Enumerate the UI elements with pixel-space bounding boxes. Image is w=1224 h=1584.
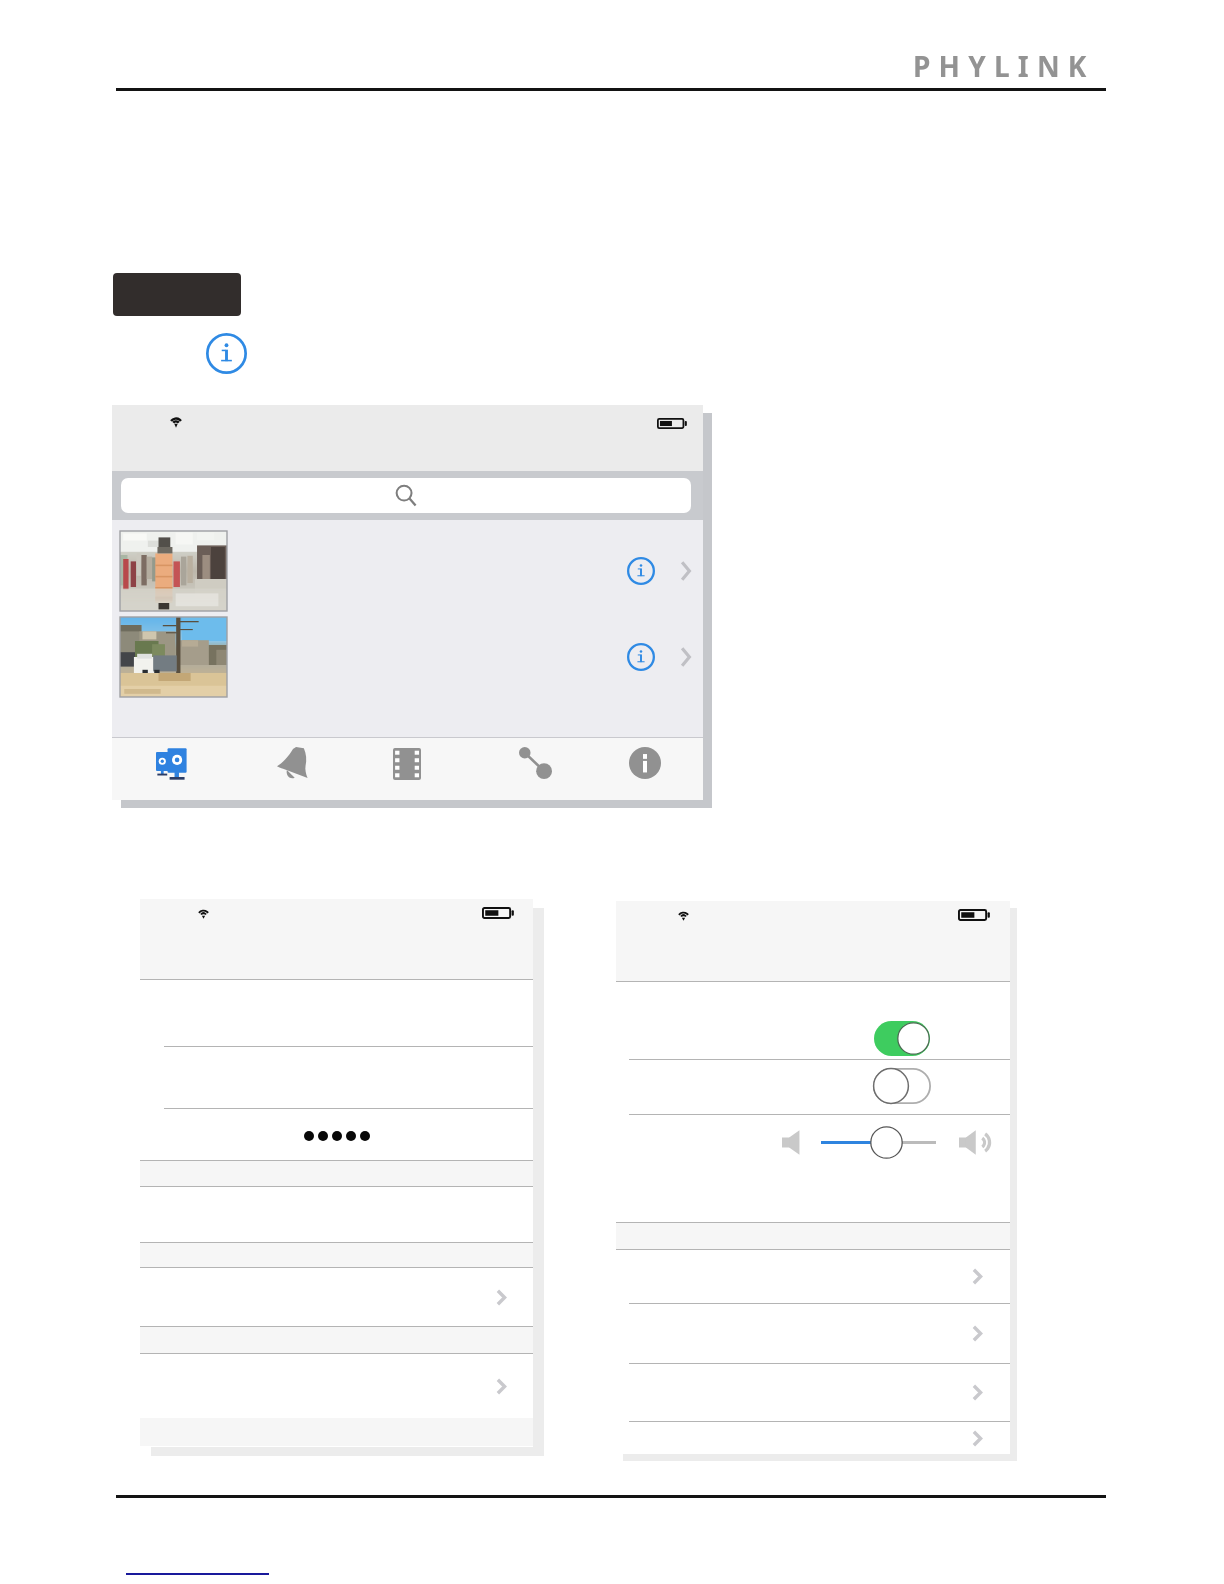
button[interactable] <box>616 1422 1010 1454</box>
button[interactable]: Share <box>467 738 585 800</box>
button[interactable]: Videos <box>349 738 467 800</box>
staticText: PHYLINK <box>913 47 1095 85</box>
button[interactable]: Cameras <box>112 738 231 800</box>
button[interactable]: Information <box>206 333 247 374</box>
button[interactable] <box>616 1115 1010 1222</box>
button[interactable]: Camera info <box>112 531 703 617</box>
button[interactable]: About <box>585 738 703 800</box>
button[interactable] <box>140 1109 533 1160</box>
button[interactable]: Toggle off <box>873 1068 931 1104</box>
button[interactable]: Camera info <box>627 643 655 671</box>
button[interactable]: Search <box>121 478 691 513</box>
button[interactable]: Camera info <box>627 557 655 585</box>
button[interactable]: Camera info <box>112 617 703 703</box>
button[interactable]: Toggle on <box>874 1021 930 1056</box>
button[interactable]: Toggle on <box>616 982 1010 1059</box>
button[interactable]: Alerts <box>231 738 349 800</box>
button[interactable]: Toggle off <box>616 1060 1010 1114</box>
